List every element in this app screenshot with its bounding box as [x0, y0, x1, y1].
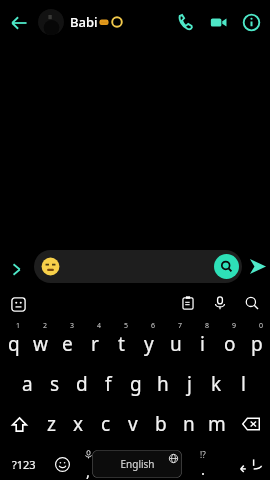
staticText: 1 — [16, 321, 21, 331]
staticText: f — [105, 371, 112, 397]
button[interactable]: z — [38, 404, 65, 444]
staticText: English — [120, 457, 155, 471]
button[interactable]: Call — [170, 7, 200, 37]
staticText: j — [187, 371, 192, 397]
staticText: 5 — [124, 321, 129, 331]
staticText: t — [118, 331, 125, 357]
staticText: e — [62, 331, 73, 357]
button[interactable]: English — [92, 450, 182, 478]
staticText: g — [130, 371, 142, 397]
staticText: q — [8, 331, 20, 357]
staticText: i — [200, 331, 205, 357]
staticText: ?123 — [12, 457, 36, 472]
staticText: p — [251, 331, 263, 357]
staticText: r — [91, 331, 99, 357]
staticText: k — [211, 371, 222, 397]
button[interactable]: Search — [214, 254, 239, 279]
button[interactable]: 9 — [216, 318, 243, 364]
button[interactable]: Babi — [70, 9, 123, 35]
button[interactable]: c — [92, 404, 119, 444]
button[interactable]: j — [176, 364, 203, 404]
staticText: a — [22, 371, 33, 397]
button[interactable]: Contact info — [236, 7, 266, 37]
staticText: w — [33, 331, 48, 357]
button[interactable]: Expand — [2, 255, 30, 283]
button[interactable]: Video call — [203, 7, 233, 37]
staticText: 9 — [232, 321, 237, 331]
staticText: b — [155, 411, 167, 437]
button[interactable]: 6 — [135, 318, 162, 364]
button[interactable]: Send — [244, 253, 270, 279]
button[interactable]: Backspace — [231, 404, 270, 444]
button[interactable]: Stickers — [8, 294, 28, 314]
staticText: l — [241, 371, 246, 397]
staticText: v — [128, 411, 138, 437]
button[interactable]: 1 — [0, 318, 27, 364]
button[interactable]: 0 — [243, 318, 270, 364]
button[interactable]: Back — [4, 8, 34, 38]
button[interactable]: 5 — [108, 318, 135, 364]
button[interactable]: 2 — [27, 318, 54, 364]
staticText: c — [101, 411, 111, 437]
staticText: 0 — [259, 321, 264, 331]
staticText: n — [183, 411, 195, 437]
staticText: 8 — [205, 321, 210, 331]
button[interactable]: ?123 — [4, 444, 44, 480]
staticText: 7 — [178, 321, 183, 331]
staticText: m — [208, 411, 226, 437]
button[interactable]: 8 — [189, 318, 216, 364]
staticText: d — [76, 371, 88, 397]
button[interactable]: d — [68, 364, 95, 404]
staticText: 4 — [97, 321, 102, 331]
button[interactable]: 3 — [54, 318, 81, 364]
staticText: 2 — [43, 321, 48, 331]
button[interactable]: Clipboard — [178, 293, 198, 313]
button[interactable]: Voice input — [210, 293, 230, 313]
button[interactable]: Enter — [226, 444, 266, 480]
button[interactable]: f — [95, 364, 122, 404]
staticText: s — [50, 371, 60, 397]
button[interactable]: k — [203, 364, 230, 404]
button[interactable]: g — [122, 364, 149, 404]
staticText: x — [73, 411, 84, 437]
staticText: u — [170, 331, 182, 357]
staticText: !? — [200, 449, 206, 460]
button[interactable]: Emoji — [48, 444, 76, 480]
button[interactable]: h — [149, 364, 176, 404]
button[interactable]: !? — [190, 444, 216, 480]
button[interactable]: m — [203, 404, 231, 444]
button[interactable]: b — [147, 404, 175, 444]
button[interactable]: x — [65, 404, 92, 444]
staticText: o — [224, 331, 236, 357]
button[interactable]: Contact photo — [38, 9, 64, 35]
staticText: z — [47, 411, 56, 437]
button[interactable]: n — [175, 404, 203, 444]
button[interactable]: Search — [242, 293, 262, 313]
staticText: 6 — [151, 321, 156, 331]
button[interactable]: 4 — [81, 318, 108, 364]
staticText: , — [86, 461, 91, 480]
button[interactable]: Search — [34, 250, 242, 283]
button[interactable]: 7 — [162, 318, 189, 364]
staticText: y — [144, 331, 154, 357]
button[interactable]: l — [230, 364, 257, 404]
button[interactable]: Shift — [0, 404, 38, 444]
button[interactable]: v — [119, 404, 147, 444]
staticText: 3 — [70, 321, 75, 331]
button[interactable]: a — [13, 364, 41, 404]
button[interactable] — [41, 257, 60, 276]
button[interactable]: , — [76, 444, 100, 480]
button[interactable]: s — [41, 364, 68, 404]
staticText: h — [157, 371, 169, 397]
staticText: Babi — [70, 13, 98, 31]
staticText: . — [201, 459, 206, 479]
